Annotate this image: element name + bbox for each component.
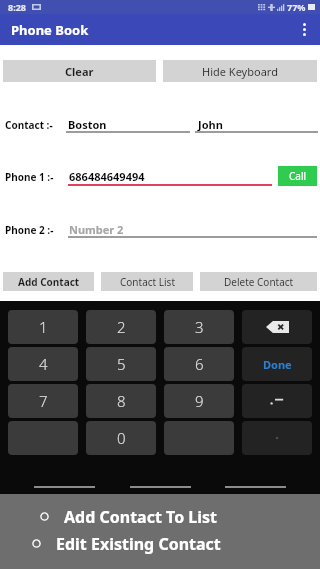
button[interactable]: 5 [86,347,156,381]
staticText: Boston [68,117,107,132]
staticText: Edit Existing Contact [56,533,221,555]
staticText: John [198,117,223,132]
staticText: Phone 2 :- [5,223,54,237]
button[interactable]: 9 [164,384,234,418]
staticText: 8 [117,391,126,411]
button[interactable]: 3 [164,310,234,344]
button[interactable]: More options [289,14,320,45]
staticText: 9 [195,391,204,411]
button[interactable]: Dot dash [242,384,312,418]
staticText: 3 [195,317,204,337]
staticText: Done [263,357,292,372]
staticText: Call [289,169,307,183]
button[interactable]: Done [242,347,312,381]
button[interactable]: Contact List [101,272,193,291]
button[interactable]: Backspace [242,310,312,344]
staticText: Number 2 [69,222,124,237]
staticText: 6 [195,354,204,374]
staticText: Phone Book [11,21,89,39]
button[interactable]: Add Contact [3,272,94,291]
button[interactable]: Add Contact To List [40,503,320,530]
staticText: Contact :- [5,118,53,132]
button[interactable]: Edit Existing Contact [32,530,320,557]
staticText: 4 [39,354,48,374]
button[interactable]: 4 [8,347,78,381]
staticText: 5 [117,354,126,374]
staticText: 686484649494 [69,169,145,184]
staticText: 0 [117,428,126,448]
button[interactable]: 0 [86,421,156,455]
staticText: Contact List [120,275,175,289]
button[interactable]: Hide Keyboard [163,60,317,82]
staticText: 7 [39,391,48,411]
staticText: Hide Keyboard [202,64,278,79]
staticText: Add Contact To List [64,506,217,528]
button[interactable]: Delete Contact [200,272,317,291]
staticText: Clear [65,64,94,79]
button[interactable]: 2 [86,310,156,344]
button[interactable]: Clear [3,60,156,82]
staticText: 8:28 [8,1,26,13]
button[interactable]: 6 [164,347,234,381]
button[interactable]: 7 [8,384,78,418]
staticText: 2 [117,317,126,337]
button[interactable]: 1 [8,310,78,344]
button[interactable]: 8 [86,384,156,418]
staticText: Add Contact [18,275,80,289]
staticText: 77% [287,1,306,13]
button[interactable]: Call [278,166,317,186]
staticText: Delete Contact [224,275,294,289]
staticText: 1 [39,317,48,337]
staticText: Phone 1 :- [5,170,54,184]
